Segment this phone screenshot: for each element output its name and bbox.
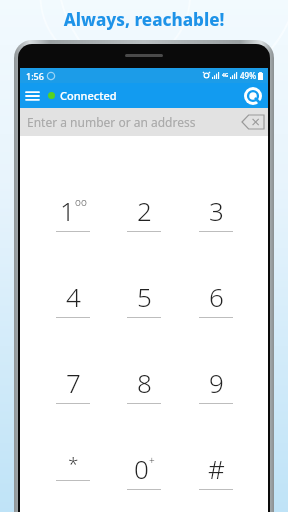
button[interactable]: Open navigation menu	[20, 84, 44, 108]
staticText: Connected	[60, 88, 117, 103]
button[interactable]: #	[185, 451, 247, 490]
button[interactable]: *	[42, 451, 104, 481]
staticText: 3	[209, 193, 224, 228]
button[interactable]: 6	[185, 279, 247, 318]
button[interactable]: 3	[185, 193, 247, 232]
staticText: 9	[209, 365, 224, 400]
staticText: 0	[134, 451, 149, 486]
staticText: 2	[137, 193, 152, 228]
staticText: #	[208, 451, 225, 486]
staticText: Always, reachable!	[0, 8, 288, 31]
staticText: 5	[137, 279, 152, 314]
button[interactable]: 7	[42, 365, 104, 404]
button[interactable]: 2	[113, 193, 175, 232]
staticText: 4G	[222, 72, 229, 79]
staticText: 8	[137, 365, 152, 400]
staticText: 1	[60, 193, 75, 228]
button[interactable]: Backspace	[242, 115, 264, 129]
staticText: Enter a number or an address	[27, 114, 196, 130]
button[interactable]: 1	[42, 193, 104, 232]
button[interactable]: 0	[113, 451, 175, 490]
button[interactable]: 4	[42, 279, 104, 318]
staticText: +	[149, 453, 155, 467]
button[interactable]: 5	[113, 279, 175, 318]
staticText: 1:56	[26, 70, 44, 82]
staticText: 4	[66, 279, 81, 314]
button[interactable]: 9	[185, 365, 247, 404]
button[interactable]: 8	[113, 365, 175, 404]
staticText: *	[68, 451, 79, 477]
button[interactable]: Enter a number or an address	[20, 108, 268, 136]
staticText: 6	[209, 279, 224, 314]
staticText: 49%	[240, 70, 256, 81]
staticText: 7	[66, 365, 81, 400]
staticText: oo	[75, 195, 87, 209]
button[interactable]: Search	[242, 85, 264, 107]
